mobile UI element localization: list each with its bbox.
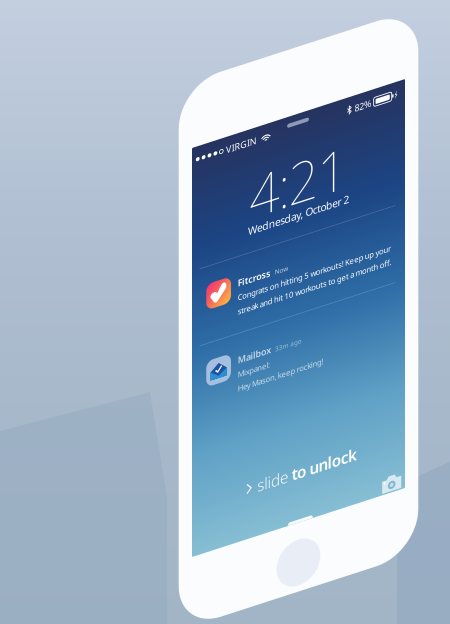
button[interactable]: Mailbox xyxy=(0,200,224,277)
button[interactable]: Fitcross xyxy=(0,123,224,200)
staticText: Congrats on hitting 5 workouts! Keep up … xyxy=(48,159,209,170)
staticText: streak and hit 10 workouts to get a mont… xyxy=(48,173,210,184)
